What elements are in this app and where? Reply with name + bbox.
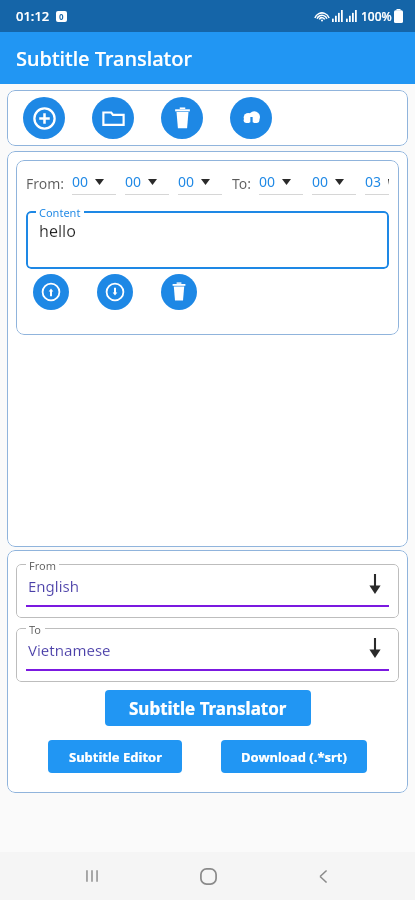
button[interactable]: Subtitle Translator: [105, 690, 311, 726]
button[interactable]: Download (.*srt): [221, 740, 367, 773]
button[interactable]: Move down: [97, 274, 133, 310]
button[interactable]: Delete entry: [161, 274, 197, 310]
staticText: Subtitle Translator: [16, 45, 192, 72]
button[interactable]: Open file: [92, 97, 134, 139]
staticText: 00: [312, 172, 329, 191]
button[interactable]: 00: [259, 172, 303, 195]
button[interactable]: Add subtitle: [23, 97, 65, 139]
staticText: 00: [178, 172, 195, 191]
button[interactable]: 00: [125, 172, 169, 195]
staticText: From:: [26, 174, 65, 193]
button[interactable]: 00: [312, 172, 356, 195]
button[interactable]: 03: [365, 172, 389, 195]
staticText: hello: [39, 220, 76, 242]
button[interactable]: 00: [72, 172, 116, 195]
staticText: English: [28, 576, 80, 596]
staticText: Download (.*srt): [241, 748, 347, 766]
staticText: Subtitle Translator: [129, 697, 287, 720]
staticText: Subtitle Editor: [69, 748, 162, 766]
button[interactable]: 00: [178, 172, 222, 195]
staticText: Content: [39, 205, 81, 220]
button[interactable]: Home: [184, 852, 232, 900]
staticText: 01:12: [16, 7, 50, 25]
staticText: To:: [232, 174, 252, 193]
staticText: 03: [365, 172, 382, 191]
button[interactable]: Back: [299, 852, 347, 900]
staticText: From: [29, 558, 56, 573]
button[interactable]: hello: [26, 211, 389, 269]
staticText: Vietnamese: [28, 640, 111, 660]
button[interactable]: Delete all: [161, 97, 203, 139]
staticText: 00: [125, 172, 142, 191]
staticText: 00: [259, 172, 276, 191]
button[interactable]: Recent apps: [68, 852, 116, 900]
button[interactable]: Subtitle Editor: [48, 740, 182, 773]
staticText: 00: [72, 172, 89, 191]
button[interactable]: Move up: [33, 274, 69, 310]
staticText: To: [29, 622, 42, 637]
button[interactable]: English: [16, 564, 399, 618]
staticText: 0: [59, 11, 64, 22]
button[interactable]: Download: [230, 97, 272, 139]
staticText: 100%: [361, 8, 392, 24]
button[interactable]: Vietnamese: [16, 628, 399, 682]
